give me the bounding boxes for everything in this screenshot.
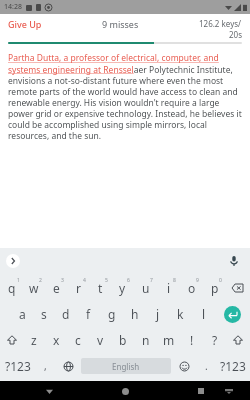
staticText: o [188, 280, 196, 296]
staticText: 20s [229, 29, 242, 40]
staticText: m [163, 332, 175, 348]
button[interactable]: k [169, 301, 192, 327]
staticText: l [202, 306, 206, 322]
button[interactable]: u [134, 275, 157, 301]
staticText: n [142, 332, 150, 348]
staticText: c [75, 332, 81, 348]
staticText: h [131, 306, 139, 322]
staticText: 126.2 keys/ [199, 18, 242, 29]
staticText: 4 [83, 277, 86, 284]
button[interactable]: Voice input [226, 253, 242, 269]
staticText: i [167, 280, 171, 296]
staticText: z [31, 332, 37, 348]
staticText: e [53, 280, 60, 296]
staticText: 5 [105, 277, 108, 284]
staticText: b [119, 332, 127, 348]
staticText: s [41, 306, 47, 322]
button[interactable]: Shift [1, 327, 23, 353]
staticText: 0 [219, 277, 222, 284]
button[interactable]: Expand suggestions [6, 254, 20, 268]
staticText: y [119, 280, 126, 296]
staticText: g [108, 306, 116, 322]
button[interactable]: ! [180, 327, 203, 353]
button[interactable]: r [67, 275, 89, 301]
button[interactable]: Recents [192, 382, 210, 400]
button[interactable]: t [89, 275, 111, 301]
staticText: , [44, 359, 47, 373]
button[interactable]: h [123, 301, 146, 327]
staticText: ? [212, 332, 218, 348]
staticText: ?123 [220, 358, 246, 374]
staticText: t [98, 280, 103, 296]
staticText: u [142, 280, 150, 296]
button[interactable]: w [23, 275, 45, 301]
button[interactable]: d [55, 301, 77, 327]
button[interactable]: ?123 [2, 353, 34, 379]
staticText: 14:28 [4, 2, 22, 12]
button[interactable]: j [146, 301, 169, 327]
button[interactable]: Give Up [8, 18, 42, 30]
button[interactable]: g [100, 301, 123, 327]
staticText: 7 [150, 277, 153, 284]
button[interactable]: ? [203, 327, 226, 353]
button[interactable]: Hide keyboard [222, 384, 236, 398]
button[interactable]: i [157, 275, 180, 301]
button[interactable]: Home [116, 382, 134, 400]
staticText: . [205, 359, 208, 373]
button[interactable]: Enter [215, 301, 249, 327]
staticText: j [156, 306, 160, 322]
staticText: x [53, 332, 60, 348]
staticText: 8 [173, 277, 176, 284]
staticText: q [8, 280, 16, 296]
button[interactable]: b [111, 327, 134, 353]
button[interactable]: p [203, 275, 226, 301]
button[interactable]: f [77, 301, 100, 327]
button[interactable]: c [67, 327, 89, 353]
staticText: Give Up [8, 18, 42, 30]
staticText: w [29, 280, 39, 296]
staticText: ?123 [5, 358, 31, 374]
button[interactable]: English [81, 358, 171, 374]
button[interactable]: Change language [57, 353, 79, 379]
button[interactable]: m [157, 327, 180, 353]
staticText: r [76, 280, 81, 296]
staticText: 6 [127, 277, 130, 284]
staticText: 2 [39, 277, 42, 284]
button[interactable]: q [1, 275, 23, 301]
staticText: v [97, 332, 104, 348]
button[interactable]: e [45, 275, 67, 301]
staticText: a [19, 306, 26, 322]
button[interactable]: l [192, 301, 215, 327]
button[interactable]: Shift [226, 327, 249, 353]
staticText: k [177, 306, 184, 322]
button[interactable]: Back [40, 382, 58, 400]
staticText: d [62, 306, 70, 322]
staticText: p [211, 280, 219, 296]
button[interactable]: a [11, 301, 33, 327]
button[interactable]: x [45, 327, 67, 353]
staticText: 9 misses [102, 18, 139, 30]
button[interactable]: n [134, 327, 157, 353]
button[interactable]: Backspace [226, 275, 249, 301]
button[interactable]: o [180, 275, 203, 301]
button[interactable]: z [23, 327, 45, 353]
button[interactable]: Emoji [173, 353, 195, 379]
staticText: ! [190, 332, 194, 348]
staticText: f [86, 306, 91, 322]
staticText: 1 [17, 277, 20, 284]
button[interactable]: ?123 [217, 353, 248, 379]
button[interactable]: v [89, 327, 111, 353]
button[interactable]: s [33, 301, 55, 327]
staticText: 3 [61, 277, 64, 284]
staticText: 9 [196, 277, 199, 284]
button[interactable]: . [195, 353, 217, 379]
button[interactable]: , [34, 353, 57, 379]
staticText: Partha Dutta, a professor of electrical,… [8, 52, 242, 142]
button[interactable]: y [111, 275, 134, 301]
staticText: English [112, 361, 140, 372]
